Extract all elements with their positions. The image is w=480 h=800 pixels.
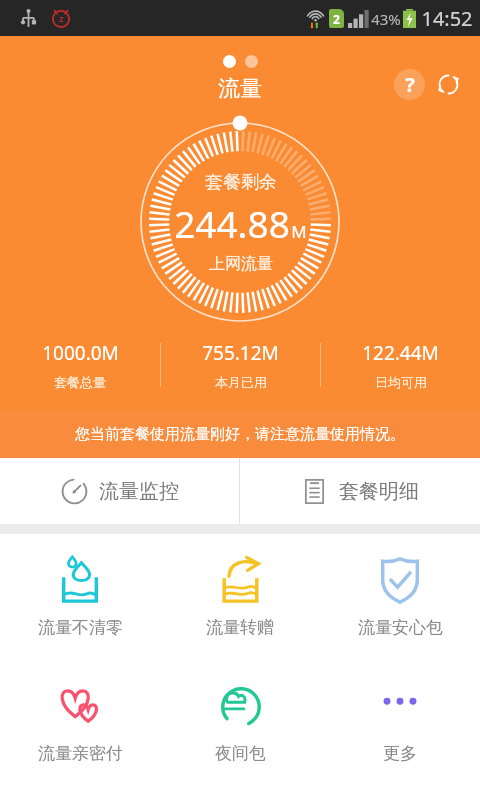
staticText: 122.44M [362,340,439,366]
staticText: 流量转赠 [206,617,274,638]
staticText: 流量 [218,75,262,103]
staticText: 上网流量 [209,254,273,274]
button[interactable]: Page 2 [245,55,258,68]
button[interactable]: 流量安心包 [320,534,480,660]
staticText: 夜间包 [215,743,266,764]
button[interactable]: 122.44M [321,336,480,394]
staticText: ? [405,71,415,98]
button[interactable]: Plan detail [240,458,480,524]
button[interactable]: 流量亲密付 [0,660,160,786]
button[interactable]: 流量不清零 [0,534,160,660]
staticText: 套餐明细 [339,479,419,504]
button[interactable]: 1000.0M [0,336,160,394]
staticText: 流量亲密付 [38,743,123,764]
button[interactable]: Page 1 [223,55,236,68]
staticText: 更多 [383,743,417,764]
button[interactable]: 755.12M [161,336,320,394]
staticText: 日均可用 [375,374,427,390]
button[interactable]: Help [394,69,425,100]
staticText: 755.12M [202,340,279,366]
button[interactable]: Refresh [433,69,464,100]
staticText: 14:52 [421,5,473,32]
staticText: 套餐总量 [54,374,106,390]
button[interactable]: Data monitor [0,458,239,524]
staticText: z [59,12,64,24]
staticText: 您当前套餐使用流量刚好，请注意流量使用情况。 [75,425,405,444]
staticText: 43% [371,9,401,29]
staticText: 流量不清零 [38,617,123,638]
staticText: 套餐剩余 [205,171,277,194]
staticText: 1000.0M [42,340,119,366]
button[interactable]: 夜间包 [160,660,320,786]
staticText: 流量安心包 [358,617,443,638]
staticText: 流量监控 [99,479,179,504]
button[interactable]: 流量转赠 [160,534,320,660]
staticText: M [291,220,307,243]
staticText: 本月已用 [215,374,267,390]
button[interactable]: 您当前套餐使用流量刚好，请注意流量使用情况。 [0,410,480,458]
staticText: 2 [333,11,340,27]
button[interactable]: 更多 [320,660,480,786]
staticText: 244.88 [174,198,290,248]
